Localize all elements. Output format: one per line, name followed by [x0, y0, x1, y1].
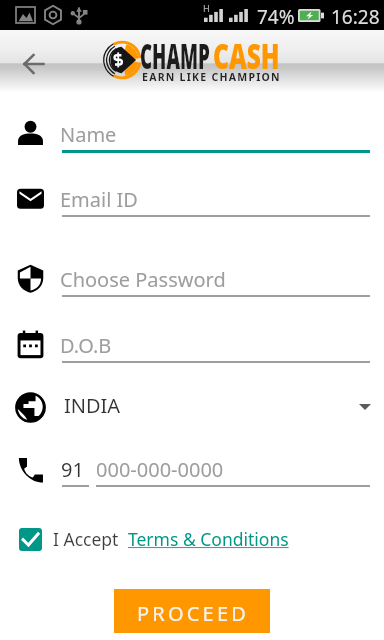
button[interactable]: Choose Password — [0, 254, 384, 302]
button[interactable]: Back — [13, 44, 53, 84]
staticText: I Accept — [53, 527, 119, 551]
button[interactable]: PROCEED — [114, 589, 270, 633]
staticText: Name — [60, 121, 117, 148]
button[interactable]: Name — [0, 108, 384, 156]
button[interactable]: Terms & Conditions — [128, 527, 294, 551]
staticText: EARN LIKE CHAMPION — [142, 69, 282, 84]
staticText: 74% — [257, 4, 295, 30]
button[interactable]: Accept Terms and Conditions — [19, 528, 42, 551]
staticText: 91 — [61, 456, 84, 483]
staticText: Email ID — [60, 186, 138, 213]
staticText: 16:28 — [331, 4, 380, 30]
staticText: CHAMP — [140, 32, 210, 80]
staticText: CASH — [213, 32, 280, 80]
button[interactable]: INDIA — [0, 383, 384, 431]
staticText: 000-000-0000 — [96, 456, 224, 483]
staticText: Choose Password — [60, 266, 226, 293]
staticText: PROCEED — [137, 600, 250, 627]
staticText: D.O.B — [60, 332, 112, 359]
staticText: Terms & Conditions — [128, 527, 294, 551]
button[interactable]: 91 — [0, 448, 384, 496]
staticText: H — [203, 2, 210, 14]
button[interactable]: D.O.B — [0, 320, 384, 368]
button[interactable]: Email ID — [0, 174, 384, 222]
staticText: INDIA — [64, 392, 121, 419]
